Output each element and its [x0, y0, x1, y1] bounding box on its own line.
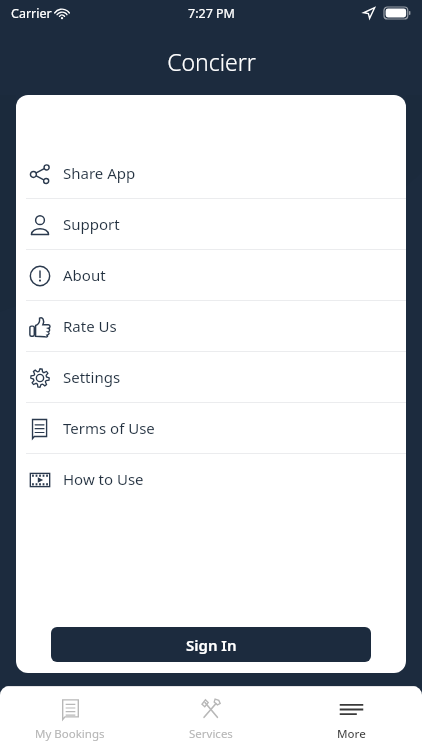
staticText: Support [63, 214, 120, 234]
staticText: Share App [63, 163, 136, 183]
staticText: More [337, 726, 366, 742]
staticText: Terms of Use [63, 418, 155, 438]
button[interactable]: My Bookings [0, 689, 140, 750]
staticText: How to Use [63, 469, 144, 489]
button[interactable]: How to Use [16, 454, 406, 504]
button[interactable]: Services [140, 689, 281, 750]
button[interactable]: Settings [16, 352, 406, 402]
staticText: Services [189, 726, 233, 742]
button[interactable]: Rate Us [16, 301, 406, 351]
staticText: About [63, 265, 106, 285]
button[interactable]: Share App [16, 148, 406, 198]
staticText: Concierr [167, 46, 256, 77]
button[interactable]: About [16, 250, 406, 300]
staticText: Rate Us [63, 316, 117, 336]
staticText: My Bookings [35, 726, 105, 742]
staticText: Carrier [11, 5, 52, 22]
staticText: 7:27 PM [188, 5, 235, 22]
staticText: Sign In [186, 635, 237, 655]
button[interactable]: Sign In [51, 627, 371, 662]
button[interactable]: More [281, 689, 422, 750]
button[interactable]: Terms of Use [16, 403, 406, 453]
button[interactable]: Support [16, 199, 406, 249]
staticText: Settings [63, 367, 121, 387]
